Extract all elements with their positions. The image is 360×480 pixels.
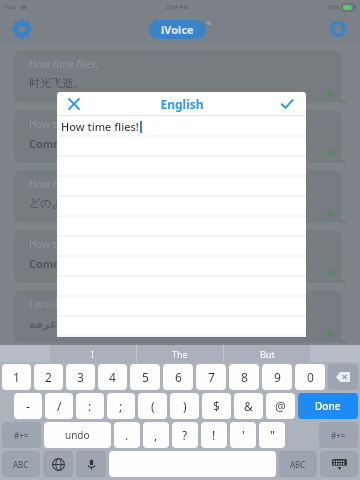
staticText: How time flies, <box>29 57 99 71</box>
staticText: 6 <box>175 369 182 385</box>
staticText: ABC <box>290 459 306 470</box>
staticText: : <box>88 398 92 414</box>
staticText: , <box>154 427 158 443</box>
button[interactable]: iVoice <box>149 20 206 39</box>
button[interactable]: Done <box>298 393 358 419</box>
staticText: どのような時間 <box>29 196 108 210</box>
staticText: ABC <box>13 459 29 470</box>
button[interactable]: Confirm <box>276 93 298 115</box>
button[interactable]: / <box>45 393 73 419</box>
button[interactable]: ' <box>230 422 256 448</box>
button[interactable]: The <box>137 345 223 362</box>
button[interactable]: 5 <box>130 364 160 390</box>
staticText: Comme le temps <box>29 136 120 151</box>
button[interactable]: But <box>224 345 310 362</box>
staticText: 时光飞逝。 <box>29 76 84 90</box>
staticText: 2:54 PM <box>166 3 189 11</box>
button[interactable]: : <box>76 393 104 419</box>
staticText: 9 <box>274 369 281 385</box>
staticText: ) <box>183 398 187 414</box>
staticText: 1 <box>13 369 20 385</box>
staticText: & <box>244 398 253 414</box>
button[interactable]: #+= <box>2 422 41 448</box>
button[interactable]: I would like a room <box>15 291 348 342</box>
staticText: iVoice <box>161 22 194 37</box>
staticText: 5 <box>142 369 149 385</box>
button[interactable]: 9 <box>262 364 292 390</box>
staticText: How time flies, <box>29 117 99 131</box>
button[interactable]: - <box>14 393 42 419</box>
button[interactable] <box>109 451 276 477</box>
staticText: 2 <box>45 369 52 385</box>
staticText: @ <box>275 398 286 414</box>
button[interactable]: I <box>50 345 136 362</box>
button[interactable]: ABC <box>2 451 40 477</box>
button[interactable]: ! <box>201 422 227 448</box>
staticText: . <box>125 427 129 443</box>
button[interactable]: Switch keyboard <box>43 451 73 477</box>
staticText: The <box>172 348 188 360</box>
button[interactable]: . <box>114 422 140 448</box>
button[interactable]: Hide keyboard <box>320 451 358 477</box>
button[interactable]: How time flies, <box>15 171 348 222</box>
staticText: How time flies, <box>29 237 99 251</box>
button[interactable]: #+= <box>319 422 358 448</box>
button[interactable]: 3 <box>66 364 95 390</box>
button[interactable]: 1 <box>2 364 31 390</box>
button[interactable]: Settings <box>10 17 34 41</box>
button[interactable]: undo <box>44 422 111 448</box>
staticText: ? <box>182 427 188 443</box>
staticText: How time flies! <box>61 119 139 134</box>
button[interactable]: 0 <box>295 364 325 390</box>
staticText: $ <box>213 398 220 414</box>
staticText: ! <box>212 427 216 443</box>
button[interactable]: 8 <box>229 364 259 390</box>
button[interactable]: 6 <box>163 364 193 390</box>
button[interactable]: ; <box>107 393 135 419</box>
staticText: ; <box>119 398 123 414</box>
staticText: 7 <box>208 369 215 385</box>
button[interactable]: " <box>259 422 285 448</box>
staticText: 86% <box>328 3 340 11</box>
button[interactable]: English <box>160 96 204 112</box>
button[interactable]: , <box>143 422 169 448</box>
staticText: ' <box>242 427 245 443</box>
button[interactable]: History <box>326 17 350 41</box>
button[interactable]: How time flies, <box>15 111 348 162</box>
button[interactable]: Dictate <box>76 451 106 477</box>
staticText: #+= <box>14 430 29 441</box>
button[interactable]: ? <box>172 422 198 448</box>
button[interactable]: Close <box>63 93 85 115</box>
staticText: / <box>57 398 62 414</box>
button[interactable]: @ <box>266 393 295 419</box>
staticText: أريد غرفة. <box>29 316 84 331</box>
button[interactable]: $ <box>202 393 231 419</box>
button[interactable]: 4 <box>98 364 127 390</box>
staticText: ( <box>151 398 155 414</box>
staticText: I <box>91 348 95 360</box>
staticText: 0 <box>307 369 314 385</box>
button[interactable]: How time flies, <box>15 51 348 102</box>
staticText: 3 <box>77 369 84 385</box>
button[interactable]: 7 <box>196 364 226 390</box>
button[interactable]: ABC <box>279 451 317 477</box>
staticText: iPad <box>4 3 17 11</box>
button[interactable]: 2 <box>34 364 63 390</box>
button[interactable]: & <box>234 393 263 419</box>
button[interactable]: ( <box>138 393 167 419</box>
staticText: #+= <box>331 430 346 441</box>
staticText: I would like a room <box>29 297 119 311</box>
button[interactable]: How time flies, <box>15 231 348 282</box>
staticText: undo <box>65 428 90 442</box>
button[interactable]: ) <box>170 393 199 419</box>
staticText: How time flies, <box>29 177 99 191</box>
staticText: But <box>260 348 275 360</box>
staticText: 8 <box>241 369 248 385</box>
staticText: 4 <box>109 369 116 385</box>
staticText: " <box>270 427 275 443</box>
staticText: Como el tiempo <box>29 256 114 271</box>
button[interactable]: Backspace <box>328 364 358 390</box>
staticText: - <box>26 398 30 414</box>
staticText: Done <box>315 399 341 413</box>
